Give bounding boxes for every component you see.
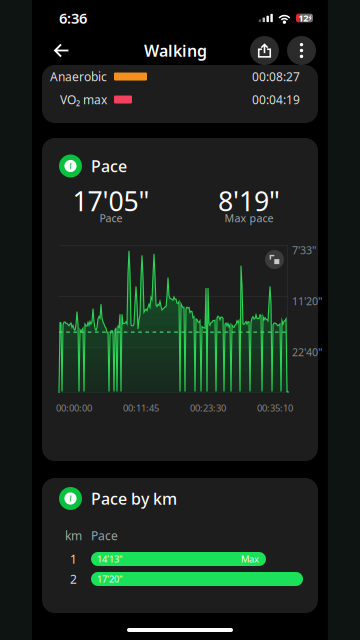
staticText: 22'40" — [292, 345, 322, 359]
staticText: Pace — [99, 211, 122, 225]
staticText: 00:35:10 — [257, 402, 293, 414]
staticText: 8'19" — [218, 183, 280, 219]
staticText: Walking — [144, 40, 207, 61]
staticText: Pace — [91, 155, 127, 177]
button[interactable]: Expand chart — [265, 250, 284, 269]
staticText: 17'20" — [97, 573, 123, 585]
button[interactable]: Back — [46, 36, 76, 64]
staticText: 17'05" — [72, 183, 149, 219]
staticText: VO₂ max — [60, 91, 107, 107]
staticText: Max — [241, 553, 259, 565]
staticText: 00:04:19 — [252, 91, 300, 107]
staticText: km — [65, 527, 82, 543]
staticText: 00:08:27 — [252, 68, 300, 84]
staticText: Pace — [91, 527, 118, 543]
button[interactable]: Share — [250, 36, 279, 65]
staticText: Pace by km — [91, 488, 177, 509]
staticText: 1 — [70, 551, 77, 567]
staticText: 2 — [70, 571, 77, 587]
staticText: Anaerobic — [50, 68, 107, 84]
button[interactable]: More options — [287, 36, 316, 65]
staticText: 11'20" — [292, 294, 322, 308]
staticText: 6:36 — [59, 8, 87, 28]
staticText: 00:00:00 — [56, 402, 92, 414]
staticText: 7'33" — [292, 243, 316, 257]
staticText: 12 — [298, 12, 308, 24]
staticText: 14'13" — [97, 553, 123, 565]
staticText: 00:23:30 — [190, 402, 226, 414]
staticText: Max pace — [224, 211, 273, 225]
staticText: 00:11:45 — [123, 402, 159, 414]
